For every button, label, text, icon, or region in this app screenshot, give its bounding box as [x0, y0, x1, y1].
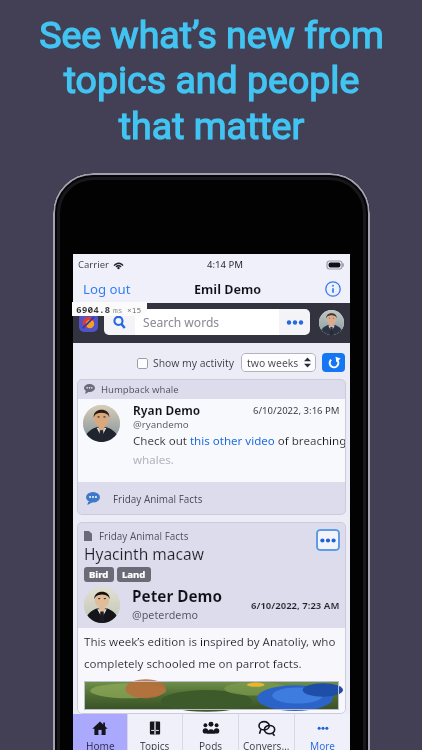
staticText: @peterdemo	[132, 607, 199, 622]
button[interactable]: More options	[316, 529, 340, 551]
staticText: 4:14 PM	[207, 258, 243, 271]
staticText: completely schooled me on parrot facts.	[84, 656, 302, 672]
staticText: two weeks	[247, 356, 299, 370]
button[interactable]: Log out	[83, 280, 131, 298]
staticText: Show my activity	[153, 356, 234, 370]
button[interactable]: Humpback whale	[77, 379, 346, 515]
staticText: Ryan Demo	[133, 402, 201, 418]
staticText: ms	[113, 305, 123, 316]
staticText: @ryandemo	[133, 418, 189, 431]
staticText: See what’s new from topics and people th…	[39, 13, 384, 149]
button[interactable]: Home	[73, 714, 127, 750]
staticText: Friday Animal Facts	[113, 492, 203, 505]
button[interactable]: Info	[325, 281, 341, 297]
staticText: Bird	[89, 568, 109, 581]
button[interactable]: Friday Animal Facts	[77, 522, 346, 714]
staticText: Land	[122, 568, 146, 581]
staticText: Topics	[140, 739, 170, 750]
staticText: Emil Demo	[194, 281, 262, 298]
button[interactable]: Search	[104, 309, 135, 335]
staticText: ×15	[127, 305, 142, 316]
staticText: Log out	[83, 280, 131, 298]
staticText: Search words	[143, 314, 220, 330]
button[interactable]: Show my activity	[137, 356, 234, 372]
staticText: 6/10/2022, 3:16 PM	[253, 404, 340, 417]
staticText: 6/10/2022, 7:23 AM	[251, 599, 340, 612]
staticText: Humpback whale	[101, 383, 179, 396]
staticText: This week’s edition is inspired by Anato…	[84, 634, 336, 650]
button[interactable]: More	[295, 714, 350, 750]
button[interactable]: Pods	[183, 714, 238, 750]
staticText: Pods	[199, 739, 223, 750]
staticText: 6904.8	[76, 303, 111, 316]
staticText: whales.	[133, 452, 174, 468]
button[interactable]: Refresh	[322, 353, 345, 372]
staticText: Check out this other video of breaching	[133, 433, 344, 449]
staticText: Friday Animal Facts	[99, 529, 189, 542]
button[interactable]: Friday Animal Facts	[77, 482, 346, 515]
button[interactable]: Topics	[128, 714, 182, 750]
staticText: Hyacinth macaw	[84, 543, 204, 564]
button[interactable]: two weeks	[241, 353, 316, 372]
button[interactable]: Convers…	[239, 714, 294, 750]
staticText: Peter Demo	[132, 586, 223, 607]
staticText: More	[310, 739, 335, 750]
button[interactable]: More search options	[279, 309, 310, 335]
staticText: Home	[86, 739, 115, 750]
staticText: Carrier	[78, 258, 110, 271]
button[interactable]: App	[79, 313, 98, 332]
button[interactable]: Profile	[319, 310, 344, 335]
staticText: Convers…	[243, 739, 290, 750]
